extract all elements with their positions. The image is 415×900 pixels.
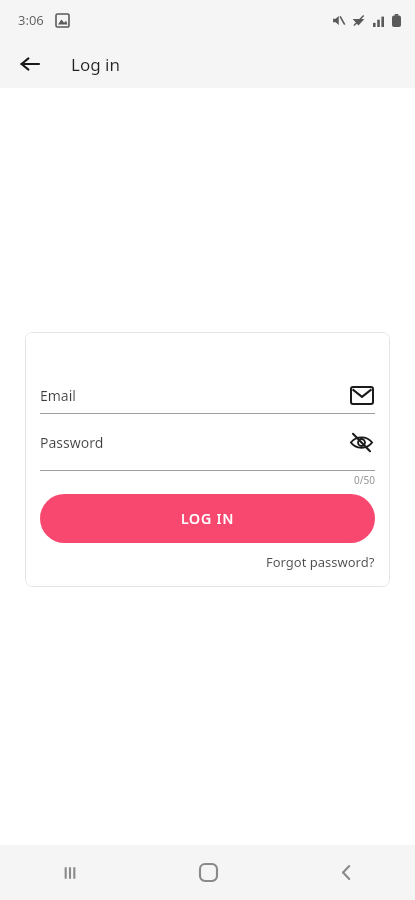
button[interactable]: Back: [12, 46, 48, 82]
button[interactable]: Password: [40, 414, 375, 470]
staticText: Log in: [71, 53, 120, 76]
button[interactable]: Recent apps: [0, 845, 139, 900]
button[interactable]: Back: [277, 845, 415, 900]
button[interactable]: Email: [40, 377, 375, 413]
staticText: Email: [40, 386, 76, 405]
button[interactable]: Forgot password?: [266, 553, 375, 571]
button[interactable]: Home: [139, 845, 277, 900]
staticText: LOG IN: [181, 509, 235, 528]
button[interactable]: Email: [349, 382, 375, 408]
staticText: Password: [40, 433, 104, 452]
staticText: 0/50: [40, 473, 375, 487]
button[interactable]: Show password: [347, 428, 375, 456]
button[interactable]: LOG IN: [40, 494, 375, 543]
staticText: 3:06: [18, 11, 44, 29]
